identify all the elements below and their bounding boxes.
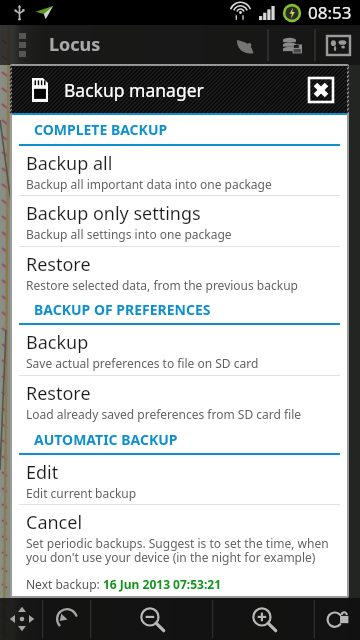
staticText: BACKUP OF PREFERENCES <box>34 300 211 319</box>
button[interactable]: Rotate map <box>43 598 91 640</box>
button[interactable]: Cancel <box>12 505 347 570</box>
button[interactable]: Restore <box>12 247 347 296</box>
staticText: AUTOMATIC BACKUP <box>34 430 178 449</box>
staticText: Backup all <box>26 151 113 176</box>
staticText: Load already saved preferences from SD c… <box>26 406 302 422</box>
button[interactable]: Zoom out <box>91 598 213 640</box>
staticText: Backup <box>26 330 89 355</box>
staticText: Backup only settings <box>26 201 201 226</box>
staticText: Edit current backup <box>26 485 137 501</box>
button[interactable]: Restore <box>12 376 347 425</box>
button[interactable]: Menu <box>19 33 26 57</box>
staticText: Backup all settings into one package <box>26 226 232 242</box>
staticText: Set periodic backups. Suggest is to set … <box>26 535 339 566</box>
button[interactable]: Data manager <box>270 25 315 65</box>
staticText: Restore <box>26 381 91 406</box>
button[interactable]: Zoom in <box>213 598 315 640</box>
staticText: 08:53 <box>308 1 352 24</box>
button[interactable]: GPS <box>223 25 268 65</box>
button[interactable]: Edit <box>12 455 347 504</box>
staticText: Edit <box>26 460 59 485</box>
button[interactable]: Close <box>300 66 342 113</box>
staticText: Restore selected data, from the previous… <box>26 277 298 293</box>
staticText: Backup manager <box>64 78 204 102</box>
button[interactable]: Backup only settings <box>12 196 347 246</box>
staticText: Restore <box>26 252 91 277</box>
button[interactable]: Backup all <box>12 146 347 195</box>
button[interactable]: Backup <box>12 325 347 375</box>
staticText: Cancel <box>26 510 83 535</box>
staticText: Next backup: <box>26 576 103 592</box>
button[interactable]: Center map <box>0 598 43 640</box>
button[interactable]: Maps <box>316 25 360 65</box>
staticText: 16 Jun 2013 07:53:21 <box>103 576 222 592</box>
staticText: Save actual preferences to file on SD ca… <box>26 355 259 371</box>
staticText: COMPLETE BACKUP <box>34 120 168 139</box>
staticText: Backup all important data into one packa… <box>26 176 272 192</box>
staticText: Locus <box>49 32 101 57</box>
button[interactable]: Lock map <box>315 598 360 640</box>
